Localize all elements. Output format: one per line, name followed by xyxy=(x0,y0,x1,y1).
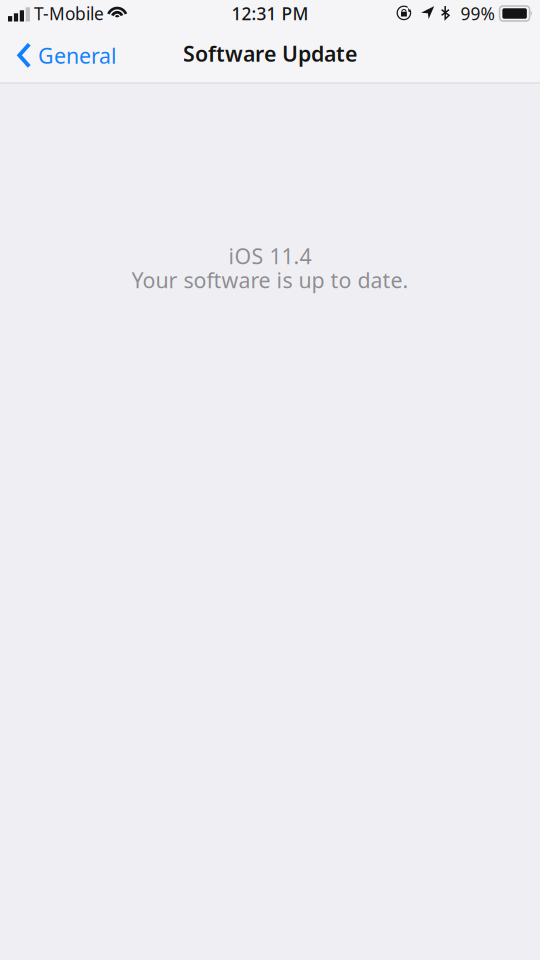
staticText: 99% xyxy=(461,2,495,25)
staticText: iOS 11.4 xyxy=(228,242,311,270)
staticText: Software Update xyxy=(183,39,357,68)
staticText: T-Mobile xyxy=(34,2,104,25)
button[interactable]: General xyxy=(0,29,129,82)
staticText: General xyxy=(38,41,117,70)
staticText: 12:31 PM xyxy=(231,2,308,25)
staticText: Your software is up to date. xyxy=(131,266,408,294)
